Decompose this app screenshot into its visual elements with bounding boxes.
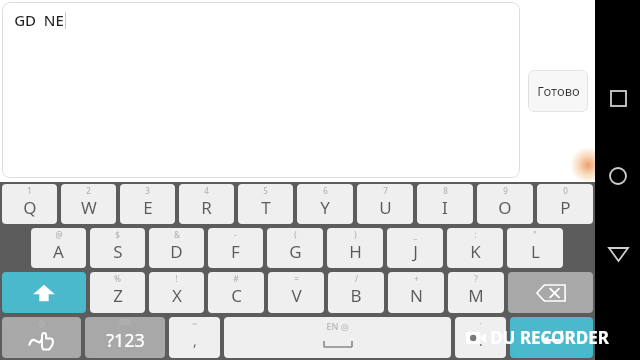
button[interactable]: GD NE xyxy=(2,2,520,178)
staticText: U xyxy=(379,196,392,219)
button[interactable]: Handwriting xyxy=(2,317,81,358)
staticText: F xyxy=(231,240,240,263)
button[interactable]: 0 xyxy=(537,184,593,224)
button[interactable]: $ xyxy=(90,228,145,268)
button[interactable]: ! xyxy=(149,272,204,313)
staticText: H xyxy=(349,240,362,263)
button[interactable]: Recorder xyxy=(570,147,606,183)
button[interactable]: 9 xyxy=(477,184,533,224)
button[interactable]: Space xyxy=(224,317,451,358)
button[interactable]: 1 xyxy=(2,184,57,224)
staticText: 9 xyxy=(503,185,508,196)
staticText: O xyxy=(498,196,512,219)
button[interactable]: : xyxy=(447,228,503,268)
staticText: ?123 xyxy=(106,328,145,353)
button[interactable]: Shift xyxy=(2,272,86,313)
button[interactable]: / xyxy=(328,272,384,313)
button[interactable]: 2 xyxy=(61,184,116,224)
staticText: , xyxy=(193,331,197,350)
button[interactable]: " xyxy=(507,228,563,268)
staticText: S xyxy=(113,240,123,263)
staticText: GD NE xyxy=(14,10,64,30)
staticText: M xyxy=(468,284,484,307)
button[interactable]: _ xyxy=(387,228,443,268)
button[interactable]: Home xyxy=(598,156,638,196)
staticText: E xyxy=(143,196,153,219)
button[interactable]: 6 xyxy=(297,184,353,224)
staticText: 1 xyxy=(27,185,32,196)
staticText: 4 xyxy=(204,185,209,196)
staticText: + xyxy=(414,273,419,284)
staticText: D xyxy=(170,240,183,263)
button[interactable]: % xyxy=(90,272,145,313)
staticText: : xyxy=(474,229,477,240)
staticText: I xyxy=(442,196,448,219)
staticText: @ xyxy=(55,229,63,240)
staticText: $ xyxy=(115,229,120,240)
button[interactable]: Recents xyxy=(598,78,638,118)
button[interactable]: 5 xyxy=(238,184,293,224)
staticText: 2 xyxy=(86,185,91,196)
staticText: N xyxy=(410,284,423,307)
staticText: DU RECORDER xyxy=(490,326,609,349)
staticText: @ xyxy=(38,318,46,329)
staticText: 3 xyxy=(145,185,150,196)
staticText: A xyxy=(53,240,64,263)
staticText: L xyxy=(531,240,540,263)
staticText: 8 xyxy=(443,185,448,196)
staticText: % xyxy=(114,273,121,284)
staticText: ( xyxy=(294,229,297,240)
staticText: P xyxy=(560,196,571,219)
button[interactable]: Back xyxy=(598,234,638,274)
staticText: ! xyxy=(175,273,178,284)
button[interactable]: Готово xyxy=(528,70,588,112)
staticText: - xyxy=(234,229,237,240)
staticText: . xyxy=(479,331,483,350)
button[interactable]: & xyxy=(149,228,204,268)
staticText: ~ xyxy=(192,318,197,329)
button[interactable]: + xyxy=(388,272,444,313)
staticText: X xyxy=(172,284,182,307)
staticText: R xyxy=(201,196,212,219)
staticText: W xyxy=(81,196,97,219)
button[interactable]: Backspace xyxy=(508,272,593,313)
staticText: 6 xyxy=(323,185,328,196)
staticText: ) xyxy=(354,229,357,240)
staticText: ? xyxy=(474,273,478,284)
button[interactable]: 7 xyxy=(357,184,413,224)
staticText: " xyxy=(533,229,537,240)
button[interactable]: ) xyxy=(327,228,383,268)
staticText: V xyxy=(291,284,302,307)
button[interactable]: ~ xyxy=(169,317,220,358)
staticText: = xyxy=(294,273,299,284)
staticText: J xyxy=(413,240,418,263)
staticText: Y xyxy=(320,196,330,219)
button[interactable]: @ xyxy=(31,228,86,268)
staticText: 0 xyxy=(563,185,568,196)
staticText: G xyxy=(289,240,302,263)
staticText: · xyxy=(479,318,482,329)
button[interactable]: 8 xyxy=(417,184,473,224)
staticText: K xyxy=(470,240,481,263)
button[interactable]: ( xyxy=(267,228,323,268)
button[interactable]: Enter xyxy=(510,317,593,358)
staticText: & xyxy=(174,229,180,240)
staticText: ⌨ xyxy=(119,318,131,327)
button[interactable]: · xyxy=(455,317,506,358)
staticText: # xyxy=(233,273,239,284)
button[interactable]: 4 xyxy=(179,184,234,224)
button[interactable]: ⌨ xyxy=(85,317,165,358)
button[interactable]: 3 xyxy=(120,184,175,224)
button[interactable]: ? xyxy=(448,272,504,313)
button[interactable]: # xyxy=(208,272,264,313)
button[interactable]: - xyxy=(208,228,263,268)
staticText: Z xyxy=(113,284,123,307)
staticText: C xyxy=(231,284,242,307)
staticText: EN ◎ xyxy=(326,320,349,332)
staticText: 7 xyxy=(383,185,388,196)
staticText: 5 xyxy=(263,185,268,196)
button[interactable]: = xyxy=(268,272,324,313)
staticText: _ xyxy=(413,229,417,240)
staticText: Q xyxy=(23,196,37,219)
staticText: / xyxy=(355,273,358,284)
